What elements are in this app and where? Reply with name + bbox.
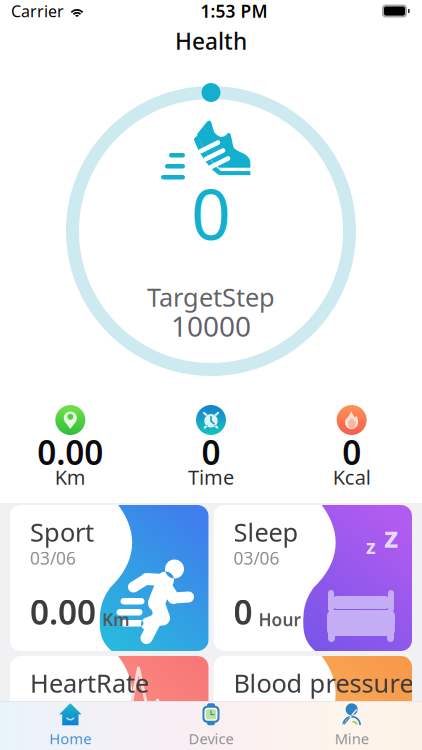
staticText: Km <box>102 608 130 631</box>
staticText: Sleep <box>233 515 298 549</box>
button[interactable]: 0 <box>141 405 281 486</box>
staticText: 10000 <box>171 307 251 345</box>
staticText: Km <box>55 464 86 490</box>
staticText: 0.00 <box>37 430 103 474</box>
staticText: 0.00 <box>30 590 96 634</box>
staticText: Device <box>188 729 233 748</box>
staticText: 0 <box>342 430 361 474</box>
staticText: z <box>366 533 376 560</box>
staticText: 1:53 PM <box>200 0 267 22</box>
button[interactable]: 0.00 <box>0 405 141 486</box>
staticText: z <box>384 517 398 556</box>
button[interactable]: Device <box>141 701 281 750</box>
staticText: HeartRate <box>30 666 149 700</box>
button[interactable]: Home <box>0 701 141 750</box>
staticText: Kcal <box>333 464 371 490</box>
staticText: Time <box>188 464 234 490</box>
staticText: Hour <box>258 608 301 631</box>
button[interactable]: Blood pressure <box>213 656 412 750</box>
staticText: Mine <box>335 729 369 748</box>
staticText: 03/06 <box>233 697 279 720</box>
staticText: Carrier <box>11 0 64 22</box>
staticText: TargetStep <box>147 280 275 314</box>
staticText: 0 <box>233 590 252 634</box>
staticText: Home <box>49 729 91 748</box>
button[interactable]: 0 <box>281 405 422 486</box>
staticText: 0 <box>191 167 231 259</box>
staticText: 03/06 <box>30 697 76 720</box>
staticText: Blood pressure <box>233 666 413 700</box>
staticText: Sport <box>30 515 94 549</box>
staticText: 0 <box>201 430 220 474</box>
staticText: 03/06 <box>30 546 76 569</box>
button[interactable]: HeartRate <box>10 656 208 750</box>
button[interactable]: Sport <box>10 505 208 651</box>
staticText: Health <box>175 26 247 56</box>
button[interactable]: Mine <box>281 701 422 750</box>
staticText: 03/06 <box>233 546 279 569</box>
button[interactable]: z <box>213 505 412 651</box>
